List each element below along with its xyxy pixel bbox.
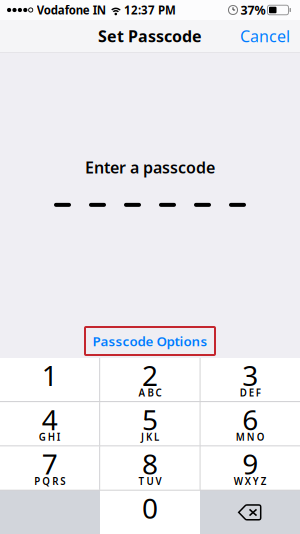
staticText: 2 bbox=[142, 356, 158, 394]
staticText: 12:37 PM bbox=[124, 2, 176, 18]
staticText: Vodafone IN bbox=[37, 2, 106, 18]
button[interactable]: 1 bbox=[0, 358, 99, 401]
staticText: M N O bbox=[236, 430, 265, 443]
staticText: 37% bbox=[240, 2, 265, 18]
button[interactable]: 5 bbox=[100, 402, 200, 445]
button[interactable]: Cancel bbox=[230, 19, 300, 53]
button[interactable]: Passcode Options bbox=[85, 327, 215, 355]
button[interactable]: 4 bbox=[0, 402, 99, 445]
staticText: G H I bbox=[39, 430, 61, 443]
button[interactable]: 2 bbox=[100, 358, 200, 401]
staticText: 1 bbox=[42, 356, 58, 394]
staticText: A B C bbox=[138, 386, 161, 399]
staticText: J K L bbox=[141, 430, 159, 443]
button[interactable]: Delete bbox=[200, 491, 300, 534]
staticText: T U V bbox=[138, 474, 161, 488]
staticText: 6 bbox=[242, 400, 258, 438]
staticText: P Q R S bbox=[34, 474, 65, 488]
staticText: 0 bbox=[142, 489, 158, 527]
staticText: 9 bbox=[242, 445, 258, 483]
staticText: 4 bbox=[42, 400, 58, 438]
button[interactable]: 0 bbox=[100, 491, 200, 534]
staticText: Passcode Options bbox=[92, 332, 207, 350]
staticText: 3 bbox=[242, 356, 258, 394]
button[interactable]: 6 bbox=[201, 402, 300, 445]
staticText: 8 bbox=[142, 445, 158, 483]
staticText: Cancel bbox=[240, 25, 290, 47]
staticText: 5 bbox=[142, 400, 158, 438]
staticText: Enter a passcode bbox=[85, 157, 215, 178]
button[interactable]: 9 bbox=[201, 446, 300, 490]
staticText: W X Y Z bbox=[234, 474, 267, 488]
staticText: Set Passcode bbox=[98, 25, 202, 47]
button[interactable]: 8 bbox=[100, 446, 200, 490]
button[interactable]: 3 bbox=[201, 358, 300, 401]
staticText: D E F bbox=[240, 386, 261, 399]
button[interactable]: 7 bbox=[0, 446, 99, 490]
staticText: 7 bbox=[42, 445, 58, 483]
